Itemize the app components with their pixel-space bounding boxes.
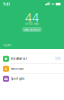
staticText: 9:41 [3,1,10,7]
staticText: TODAY [3,43,12,47]
staticText: Mountain [11,67,24,70]
staticText: Sport cycle [11,77,25,80]
staticText: Start session [24,28,40,31]
staticText: 340 [55,57,61,60]
button[interactable]: Breakfast set [0,54,64,64]
staticText: 44 [25,9,39,25]
staticText: Breakfast set [11,57,27,60]
button[interactable]: Sport cycle [0,74,64,84]
button[interactable]: Mountain [0,64,64,74]
button[interactable]: Start session [22,27,42,32]
staticText: of 60 min [25,22,39,26]
